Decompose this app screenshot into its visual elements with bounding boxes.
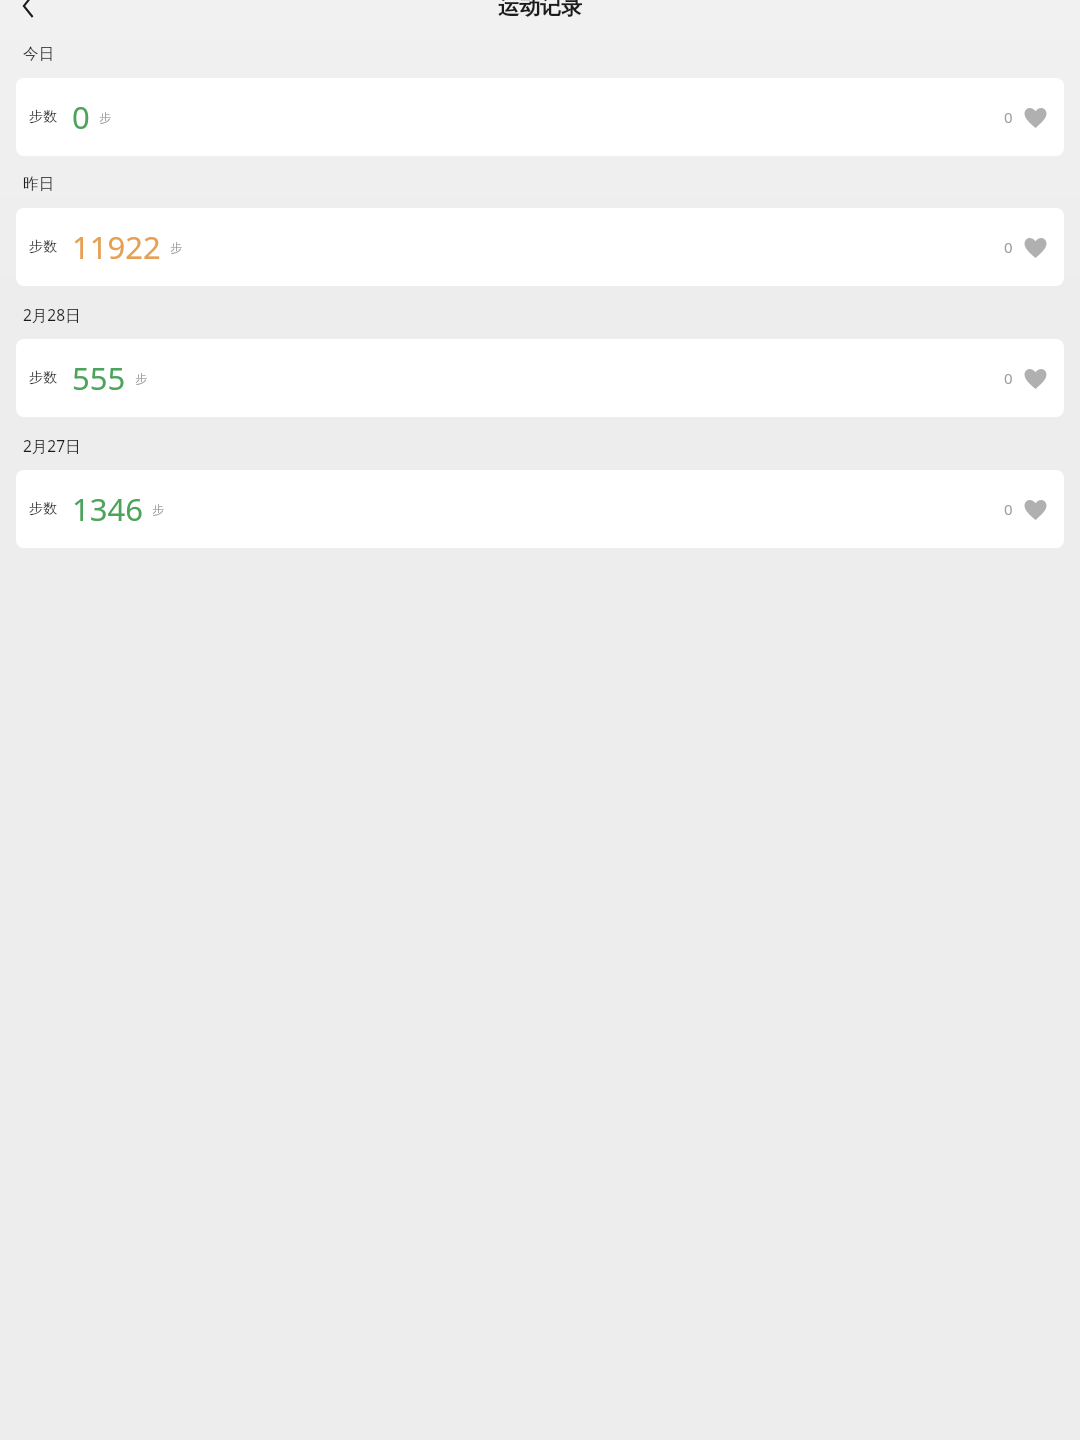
staticText: 步 <box>99 110 111 125</box>
staticText: 0 <box>1004 107 1013 127</box>
staticText: 步数 <box>29 108 57 126</box>
button[interactable]: 步数 <box>16 339 1064 417</box>
staticText: 步数 <box>29 238 57 256</box>
button[interactable]: Like <box>1022 365 1048 391</box>
staticText: 2月27日 <box>23 435 81 456</box>
button[interactable]: Like <box>1022 104 1048 130</box>
staticText: 步 <box>152 502 164 517</box>
button[interactable]: 步数 <box>16 208 1064 286</box>
staticText: 555 <box>72 357 126 399</box>
staticText: 运动记录 <box>498 0 582 18</box>
staticText: 0 <box>1004 499 1013 519</box>
button[interactable]: Back <box>12 0 44 18</box>
staticText: 2月28日 <box>23 304 81 325</box>
staticText: 昨日 <box>23 174 54 194</box>
button[interactable]: Like <box>1022 234 1048 260</box>
staticText: 0 <box>1004 237 1013 257</box>
staticText: 步数 <box>29 369 57 387</box>
staticText: 1346 <box>72 488 143 530</box>
staticText: 步 <box>135 371 147 386</box>
button[interactable]: 步数 <box>16 78 1064 156</box>
staticText: 0 <box>72 96 90 138</box>
staticText: 步数 <box>29 500 57 518</box>
staticText: 11922 <box>72 226 161 268</box>
button[interactable]: 步数 <box>16 470 1064 548</box>
staticText: 今日 <box>23 44 54 64</box>
staticText: 0 <box>1004 368 1013 388</box>
button[interactable]: Like <box>1022 496 1048 522</box>
staticText: 步 <box>170 240 182 255</box>
